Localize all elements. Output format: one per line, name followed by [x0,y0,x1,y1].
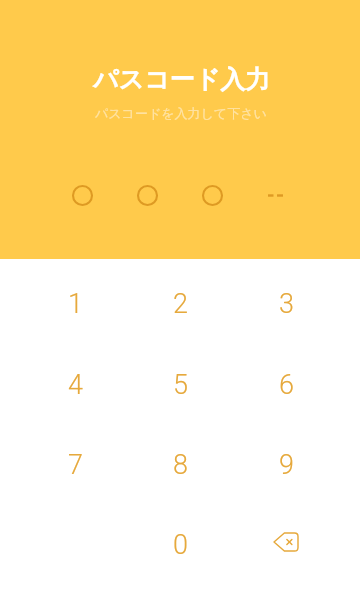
staticText: パスコード入力 [93,64,271,95]
button[interactable]: 4 [35,355,115,415]
staticText: 3 [279,288,294,320]
staticText: 5 [173,369,188,401]
staticText: パスコードを入力して下さい [95,105,267,121]
staticText: 4 [68,369,83,401]
button[interactable]: Backspace [246,512,326,572]
button[interactable]: 6 [246,355,326,415]
button[interactable]: 5 [140,355,220,415]
button[interactable]: 8 [140,435,220,495]
button[interactable]: 9 [246,435,326,495]
staticText: 9 [279,449,294,481]
button[interactable]: 1 [35,274,115,334]
staticText: 6 [279,369,294,401]
button[interactable]: 2 [140,274,220,334]
button[interactable]: 3 [246,274,326,334]
staticText: 0 [173,529,188,561]
other: Backspace [273,532,299,552]
staticText: 2 [173,288,188,320]
button[interactable]: 0 [140,515,220,575]
staticText: 1 [68,288,83,320]
button[interactable]: 7 [35,435,115,495]
staticText: 7 [68,449,83,481]
staticText: 8 [173,449,188,481]
